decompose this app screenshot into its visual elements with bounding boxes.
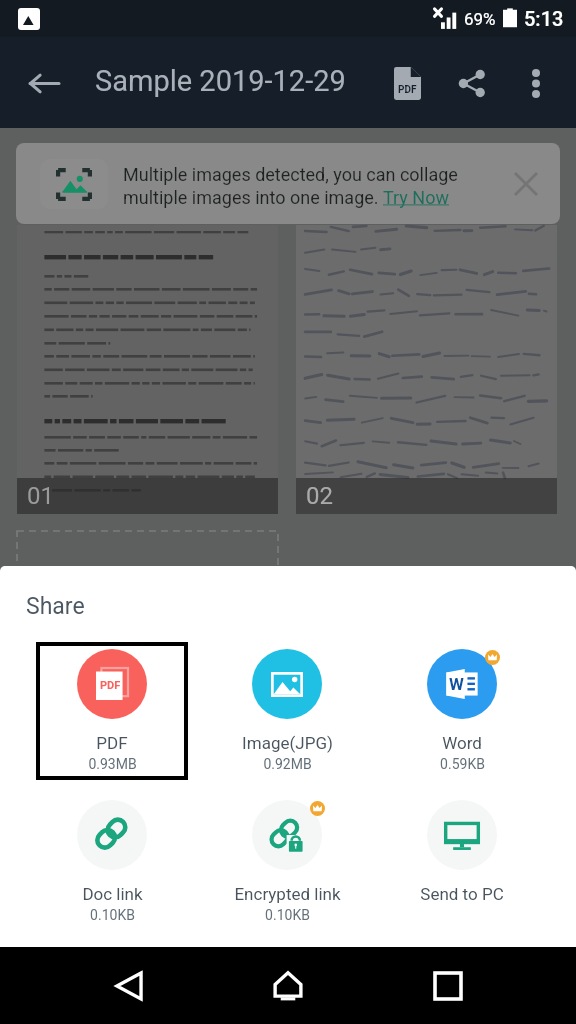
staticText: 02 — [306, 482, 333, 510]
staticText: 0.92MB — [263, 756, 312, 772]
staticText: 0.93MB — [88, 756, 137, 772]
staticText: Try Now — [383, 187, 449, 208]
staticText: 0.59KB — [440, 756, 485, 772]
staticText: PDF — [96, 733, 128, 753]
staticText: Word — [442, 733, 482, 753]
staticText: 69% — [464, 9, 496, 29]
button[interactable]: PDF — [36, 642, 188, 780]
button[interactable]: Multiple images detected, you can collag… — [16, 143, 560, 224]
staticText: 01 — [27, 482, 54, 510]
button[interactable]: Share — [448, 60, 494, 106]
staticText: Encrypted link — [234, 884, 341, 904]
staticText: Doc link — [82, 884, 143, 904]
staticText: Multiple images detected, you can collag… — [123, 164, 458, 185]
staticText: Image(JPG) — [242, 733, 333, 753]
button[interactable]: Back — [98, 955, 160, 1017]
staticText: PDF — [398, 84, 417, 96]
button[interactable]: Doc link — [36, 793, 188, 931]
staticText: Sample 2019-12-29 — [95, 64, 346, 98]
staticText: 5:13 — [524, 7, 564, 30]
button[interactable]: Image(JPG) — [211, 642, 363, 780]
button[interactable]: W — [386, 642, 538, 780]
button[interactable]: Encrypted link — [211, 793, 363, 931]
staticText: Send to PC — [420, 884, 504, 904]
button[interactable]: Page 01 — [17, 225, 278, 514]
button[interactable]: Export PDF — [384, 60, 430, 106]
button[interactable]: Recents — [417, 955, 479, 1017]
staticText: W — [449, 674, 464, 694]
staticText: multiple images into one image. — [123, 187, 383, 208]
staticText: 0.10KB — [90, 907, 135, 923]
staticText: Share — [26, 593, 85, 620]
staticText: PDF — [100, 679, 121, 692]
button[interactable]: Send to PC — [386, 793, 538, 931]
button[interactable]: Back — [22, 61, 66, 105]
button[interactable]: Page 02 — [296, 225, 557, 514]
button[interactable]: Close — [506, 164, 546, 204]
button[interactable]: More options — [513, 60, 559, 106]
button[interactable]: Home — [257, 955, 319, 1017]
staticText: 0.10KB — [265, 907, 310, 923]
